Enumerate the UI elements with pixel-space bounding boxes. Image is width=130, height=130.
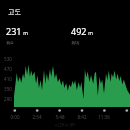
staticText: 492 bbox=[71, 25, 87, 37]
staticText: 350 bbox=[4, 86, 12, 92]
staticText: 410 bbox=[4, 76, 12, 82]
staticText: 231 bbox=[6, 25, 22, 37]
staticText: 290 bbox=[4, 96, 12, 102]
staticText: 0:00 bbox=[5, 114, 25, 120]
staticText: 11:36 bbox=[94, 114, 114, 120]
staticText: 2:54 bbox=[27, 114, 47, 120]
staticText: 시간(시:분) bbox=[0, 122, 130, 128]
staticText: 고도 bbox=[8, 8, 21, 16]
staticText: 8:42 bbox=[72, 114, 92, 120]
staticText: 최소 bbox=[6, 40, 14, 45]
staticText: m bbox=[22, 30, 28, 37]
staticText: 470 bbox=[4, 66, 12, 72]
staticText: 5:48 bbox=[50, 114, 70, 120]
staticText: 최대 bbox=[71, 40, 79, 45]
staticText: m bbox=[87, 30, 93, 37]
staticText: 530 bbox=[4, 56, 12, 62]
